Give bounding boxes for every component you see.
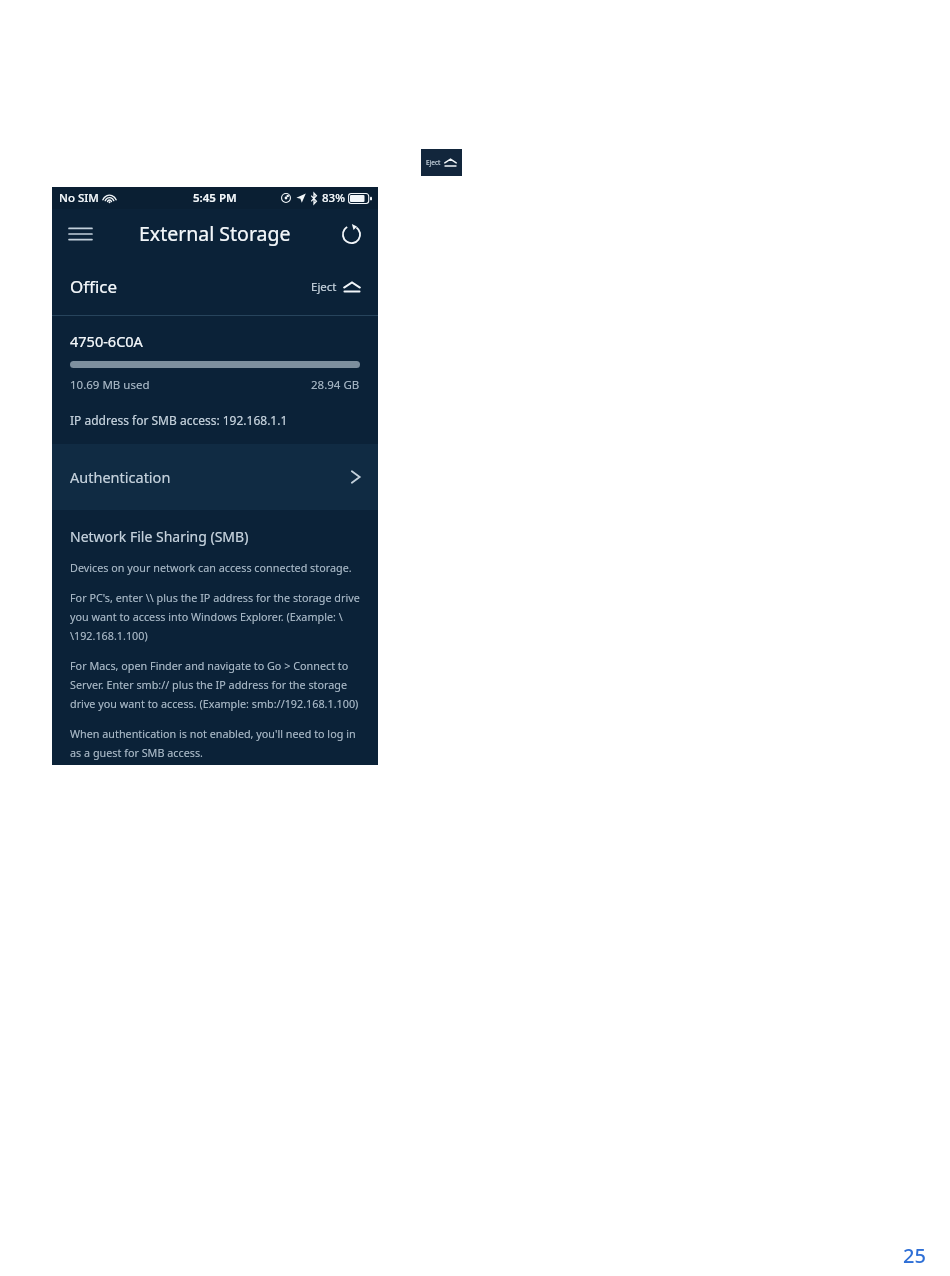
staticText: 25	[903, 1242, 926, 1269]
staticText: Devices on your network can access conne…	[70, 560, 352, 575]
staticText: For Macs, open Finder and navigate to Go…	[70, 658, 362, 711]
button[interactable]: Eject	[421, 149, 462, 176]
staticText: 83%	[322, 190, 345, 206]
staticText: No SIM	[59, 190, 99, 206]
button[interactable]: Refresh	[334, 217, 368, 251]
button[interactable]: Menu	[61, 215, 99, 253]
staticText: Office	[70, 275, 118, 298]
staticText: Authentication	[70, 467, 171, 487]
staticText: When authentication is not enabled, you'…	[70, 726, 362, 760]
staticText: Eject	[311, 279, 337, 295]
staticText: IP address for SMB access: 192.168.1.1	[70, 412, 288, 428]
staticText: 10.69 MB used	[70, 377, 150, 393]
staticText: 28.94 GB	[311, 377, 360, 393]
button[interactable]: Authentication	[52, 444, 378, 510]
button[interactable]: Eject	[309, 274, 363, 300]
staticText: 4750-6C0A	[70, 331, 143, 351]
staticText: Network File Sharing (SMB)	[70, 527, 249, 546]
staticText: For PC's, enter \\ plus the IP address f…	[70, 590, 362, 643]
staticText: External Storage	[139, 220, 291, 247]
staticText: 5:45 PM	[193, 190, 237, 206]
staticText: Eject	[426, 158, 441, 167]
